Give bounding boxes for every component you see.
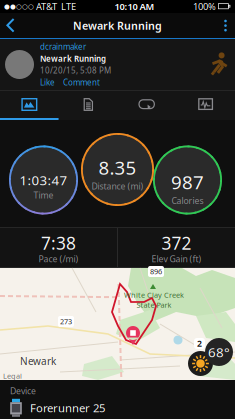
staticText: 1:03:47 [19,171,67,189]
staticText: 100% [193,0,216,13]
staticText: 10/20/15, 5:08 PM [40,65,111,76]
staticText: Calories [171,195,203,207]
staticText: Device [10,385,36,397]
button[interactable]: Forerunner 25 [0,397,235,417]
button[interactable]: Laps [117,91,176,120]
staticText: Legal [3,371,22,381]
staticText: 372 [161,231,191,255]
button[interactable]: Details [59,91,118,120]
staticText: Time [33,189,53,201]
staticText: 7:38 [41,231,76,255]
staticText: 273 [60,316,72,326]
staticText: LTE [57,0,76,13]
staticText: 2 [197,338,202,349]
button[interactable]: Charts [176,91,235,120]
staticText: Like [40,77,55,88]
staticText: 8.35 [98,155,136,180]
button[interactable]: Map [0,91,59,120]
staticText: 68° [208,343,230,361]
staticText: AT&T [34,0,57,13]
staticText: Elev Gain (ft) [151,253,201,265]
staticText: Newark Running [40,53,106,64]
button[interactable]: More options [216,13,235,37]
staticText: 896 [150,266,162,276]
staticText: Pace (/mi) [38,253,78,265]
staticText: Forerunner 25 [30,400,105,415]
button[interactable]: Like [40,77,55,88]
button[interactable]: Comment [63,77,100,88]
staticText: White Clay Creek [124,290,184,300]
staticText: ●●○○○ [4,3,34,10]
staticText: Comment [63,77,100,88]
staticText: 10:10 AM [114,0,154,13]
staticText: 987 [171,169,204,195]
staticText: Newark [20,354,56,368]
staticText: Distance (mi) [91,180,143,192]
staticText: Newark Running [73,18,162,33]
staticText: State Park [136,300,171,310]
staticText: dcrainmaker [40,41,86,52]
button[interactable]: Back [0,13,21,38]
